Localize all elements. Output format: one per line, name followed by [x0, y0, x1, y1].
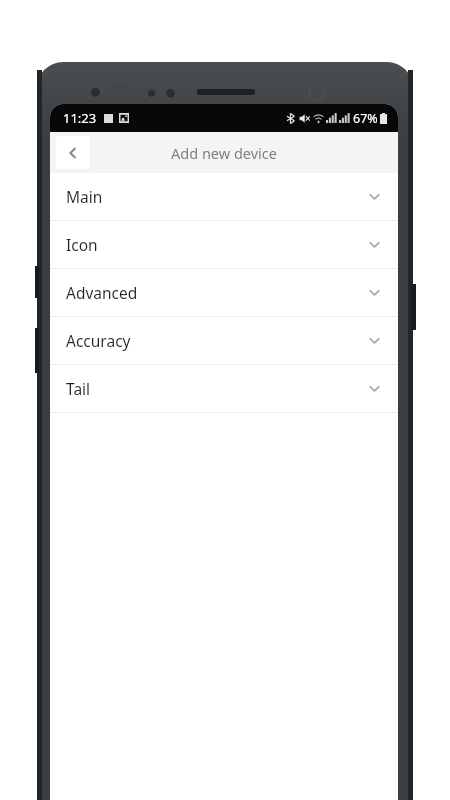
button[interactable]: Advanced [50, 269, 398, 316]
staticText: Icon [66, 234, 98, 255]
button[interactable]: Tail [50, 365, 398, 412]
staticText: Accuracy [66, 330, 131, 351]
staticText: Advanced [66, 282, 138, 303]
button[interactable]: Icon [50, 221, 398, 268]
staticText: Tail [66, 378, 91, 399]
button[interactable]: Accuracy [50, 317, 398, 364]
staticText: 11:23 [63, 109, 97, 127]
staticText: Main [66, 186, 103, 207]
button[interactable]: Main [50, 173, 398, 220]
staticText: 67% [353, 110, 378, 127]
staticText: Add new device [171, 143, 277, 163]
button[interactable]: Back [56, 136, 90, 169]
